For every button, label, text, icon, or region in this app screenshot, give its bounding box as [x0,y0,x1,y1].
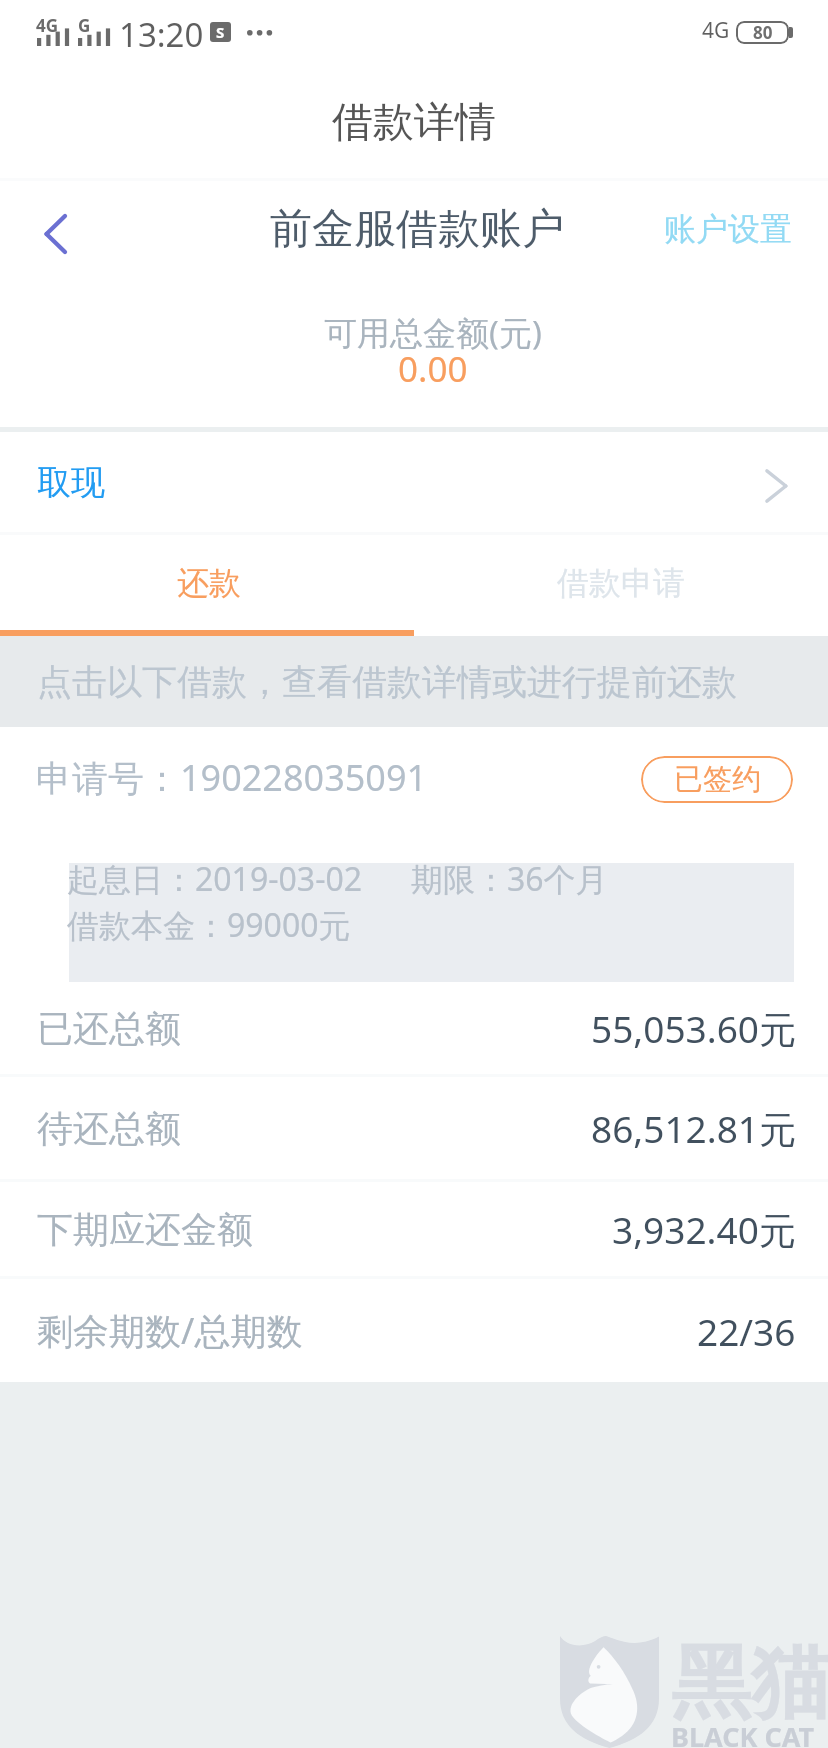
staticText: 期限：36个月 [411,857,608,901]
staticText: 4G [36,14,59,37]
button[interactable] [0,727,828,982]
button[interactable]: 剩余期数/总期数 [0,1279,828,1382]
staticText: 借款详情 [332,97,496,149]
button[interactable]: 取现 [0,432,828,532]
staticText: 下期应还金额 [37,1207,253,1252]
staticText: 前金服借款账户 [270,203,564,256]
button[interactable]: 还款 [0,535,414,636]
staticText: 取现 [37,461,105,504]
staticText: 0.00 [398,345,468,393]
staticText: 还款 [177,563,241,603]
staticText: 黑猫 [671,1633,828,1734]
staticText: 待还总额 [37,1106,181,1151]
staticText: G [78,14,91,37]
staticText: 已还总额 [37,1006,181,1051]
button[interactable]: 借款申请 [414,535,828,636]
staticText: 借款申请 [557,563,685,603]
staticText: S [216,22,225,42]
staticText: 账户设置 [664,209,792,249]
staticText: 起息日：2019-03-02 [67,857,363,901]
staticText: BLACK CAT [671,1718,815,1748]
button[interactable]: Back [10,182,98,270]
staticText: 借款本金：99000元 [67,903,351,947]
staticText: 已签约 [674,761,761,798]
staticText: 22/36 [697,1306,796,1356]
button[interactable]: 待还总额 [0,1077,828,1179]
button[interactable]: 账户设置 [628,188,828,264]
staticText: 4G [702,16,730,45]
staticText: 13:20 [119,12,204,57]
staticText: 可用总金额(元) [324,310,542,355]
button[interactable]: 下期应还金额 [0,1182,828,1276]
staticText: 申请号：190228035091 [36,753,428,802]
staticText: 3,932.40元 [612,1204,796,1255]
staticText: 点击以下借款，查看借款详情或进行提前还款 [37,660,737,704]
staticText: 55,053.60元 [591,1003,796,1054]
staticText: 剩余期数/总期数 [37,1306,303,1355]
staticText: 80 [753,21,773,44]
button[interactable]: 已还总额 [0,982,828,1074]
staticText: 86,512.81元 [591,1103,796,1154]
